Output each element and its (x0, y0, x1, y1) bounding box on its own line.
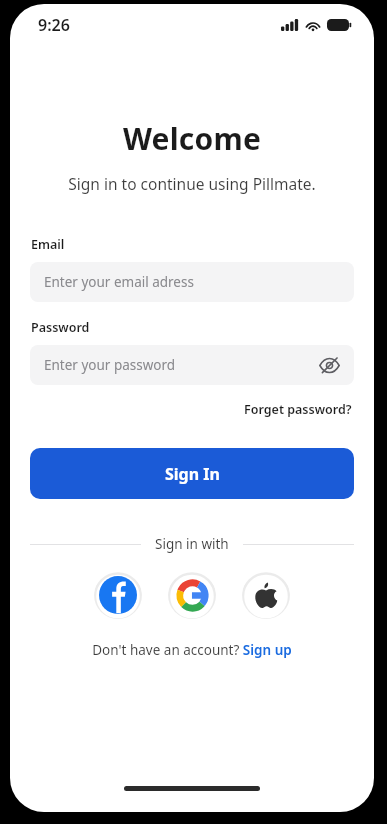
button[interactable]: Enter your password (30, 345, 354, 385)
staticText: Email (31, 236, 65, 253)
staticText: Forget password? (244, 401, 352, 418)
button[interactable]: Don't have an account? Sign up (30, 641, 354, 659)
button[interactable]: Enter your email adress (30, 262, 354, 302)
button[interactable]: Sign in with Google (168, 571, 216, 619)
staticText: Enter your email adress (44, 273, 342, 291)
staticText: Password (31, 319, 90, 336)
staticText: Don't have an account? Sign up (92, 641, 292, 659)
button[interactable]: Sign In (30, 448, 354, 499)
button[interactable]: Sign in with Apple (242, 571, 290, 619)
staticText: Welcome (30, 118, 354, 159)
staticText: 9:26 (38, 14, 70, 36)
staticText: Sign in with (155, 535, 229, 553)
button[interactable]: Show password (316, 352, 342, 378)
button[interactable]: Forget password? (242, 399, 354, 420)
staticText: Enter your password (44, 356, 316, 374)
staticText: Sign in to continue using Pillmate. (30, 173, 354, 194)
staticText: Sign In (165, 463, 220, 485)
button[interactable]: Sign in with Facebook (94, 571, 142, 619)
